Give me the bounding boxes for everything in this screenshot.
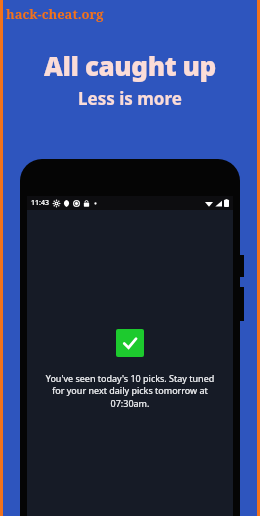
staticText: Less is more: [78, 87, 182, 110]
staticText: You've seen today's 10 picks. Stay tuned…: [43, 372, 217, 410]
staticText: All caught up: [44, 48, 216, 83]
staticText: hack-cheat.org: [6, 5, 104, 23]
staticText: 11:43: [31, 198, 49, 208]
button[interactable]: [116, 329, 144, 357]
